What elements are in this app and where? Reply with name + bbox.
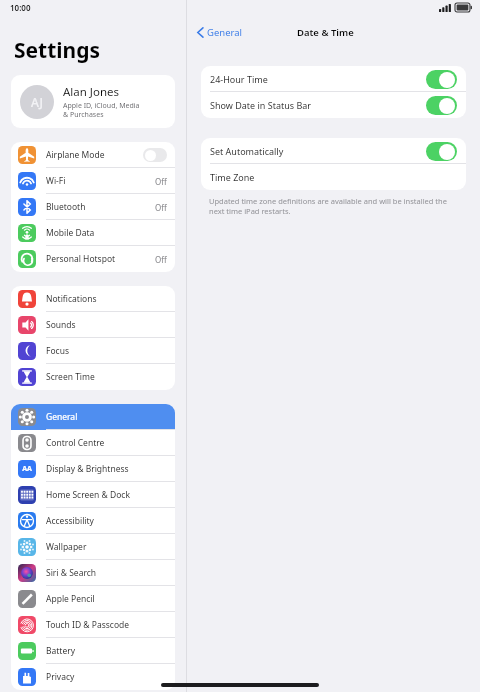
button[interactable]: Focus <box>11 338 175 364</box>
staticText: Apple ID, iCloud, Media & Purchases <box>63 101 140 119</box>
button[interactable]: Toggle <box>426 96 457 115</box>
staticText: Apple Pencil <box>46 593 95 605</box>
staticText: Control Centre <box>46 437 105 449</box>
staticText: General <box>207 26 243 39</box>
staticText: Home Screen & Dock <box>46 489 130 501</box>
staticText: Bluetooth <box>46 201 86 213</box>
button[interactable]: Notifications <box>11 286 175 312</box>
staticText: Personal Hotspot <box>46 253 116 265</box>
button[interactable]: Wallpaper <box>11 534 175 560</box>
button[interactable]: General <box>11 404 175 430</box>
button[interactable]: Personal Hotspot <box>11 246 175 272</box>
staticText: 10:00 <box>10 2 31 13</box>
button[interactable]: Bluetooth <box>11 194 175 220</box>
button[interactable]: Set Automatically <box>201 138 466 164</box>
staticText: Accessibility <box>46 515 94 527</box>
staticText: Wi-Fi <box>46 175 66 187</box>
staticText: AJ <box>31 94 43 110</box>
staticText: Battery <box>46 645 76 657</box>
button[interactable]: General <box>195 24 245 41</box>
staticText: Off <box>155 254 167 265</box>
staticText: Date & Time <box>297 26 354 39</box>
button[interactable]: Toggle <box>143 148 167 162</box>
button[interactable]: Screen Time <box>11 364 175 390</box>
staticText: Show Date in Status Bar <box>210 99 312 111</box>
staticText: Display & Brightness <box>46 463 129 475</box>
button[interactable]: Touch ID & Passcode <box>11 612 175 638</box>
button[interactable]: Sounds <box>11 312 175 338</box>
button[interactable]: AJ <box>11 75 175 128</box>
staticText: Notifications <box>46 293 97 305</box>
button[interactable]: Time Zone <box>201 164 466 190</box>
button[interactable]: Privacy <box>11 664 175 690</box>
button[interactable]: Mobile Data <box>11 220 175 246</box>
staticText: General <box>46 411 78 423</box>
staticText: AA <box>22 464 32 474</box>
button[interactable]: Apple Pencil <box>11 586 175 612</box>
button[interactable]: Home Screen & Dock <box>11 482 175 508</box>
staticText: Mobile Data <box>46 227 95 239</box>
staticText: Settings <box>14 36 101 65</box>
button[interactable]: Show Date in Status Bar <box>201 92 466 118</box>
staticText: Touch ID & Passcode <box>46 619 130 631</box>
staticText: Updated time zone definitions are availa… <box>209 196 447 216</box>
button[interactable]: Siri & Search <box>11 560 175 586</box>
staticText: Sounds <box>46 319 76 331</box>
button[interactable]: Accessibility <box>11 508 175 534</box>
staticText: Time Zone <box>210 171 255 183</box>
staticText: 24-Hour Time <box>210 73 268 85</box>
staticText: Privacy <box>46 671 75 683</box>
button[interactable]: Airplane Mode <box>11 142 175 168</box>
button[interactable]: AA <box>11 456 175 482</box>
staticText: Off <box>155 176 167 187</box>
button[interactable]: Battery <box>11 638 175 664</box>
button[interactable]: Toggle <box>426 142 457 161</box>
staticText: Focus <box>46 345 69 357</box>
staticText: Off <box>155 202 167 213</box>
button[interactable]: Control Centre <box>11 430 175 456</box>
staticText: Screen Time <box>46 371 95 383</box>
button[interactable]: Toggle <box>426 70 457 89</box>
staticText: Airplane Mode <box>46 149 105 161</box>
staticText: Siri & Search <box>46 567 97 579</box>
staticText: Wallpaper <box>46 541 87 553</box>
button[interactable]: 24-Hour Time <box>201 66 466 92</box>
staticText: Set Automatically <box>210 145 284 157</box>
button[interactable]: Wi-Fi <box>11 168 175 194</box>
staticText: Alan Jones <box>63 84 120 100</box>
